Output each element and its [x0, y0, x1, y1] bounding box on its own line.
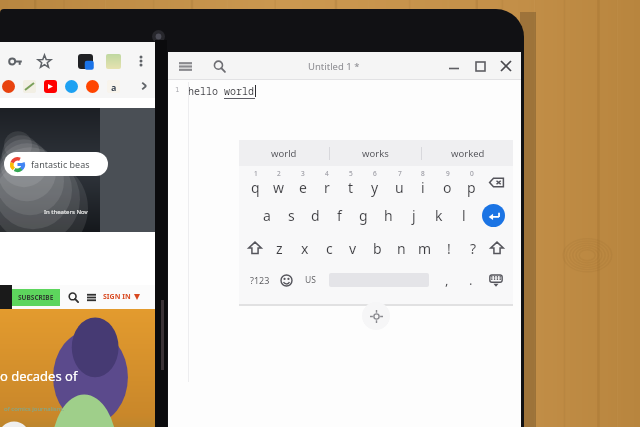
button[interactable]: d: [303, 199, 327, 232]
staticText: j: [412, 206, 416, 225]
button[interactable]: g: [351, 199, 376, 232]
staticText: i: [421, 178, 425, 197]
button[interactable]: Move keyboard: [362, 302, 390, 330]
button[interactable]: 9: [435, 166, 459, 199]
button[interactable]: SUBSCRIBE: [12, 289, 60, 306]
staticText: d: [311, 206, 320, 225]
button[interactable]: 6: [363, 166, 387, 199]
button[interactable]: 0: [459, 166, 483, 199]
button[interactable]: works: [330, 140, 421, 166]
staticText: o decades of: [0, 367, 78, 385]
staticText: m: [418, 239, 432, 258]
button[interactable]: b: [365, 232, 389, 264]
staticText: k: [435, 206, 443, 225]
staticText: s: [288, 206, 295, 225]
button[interactable]: 8: [411, 166, 435, 199]
button[interactable]: 7: [387, 166, 411, 199]
button[interactable]: ?: [461, 232, 485, 264]
button[interactable]: Space: [323, 273, 435, 287]
staticText: l: [462, 206, 466, 225]
staticText: worked: [451, 147, 485, 160]
staticText: 1: [175, 84, 180, 94]
button[interactable]: world: [239, 140, 329, 166]
button[interactable]: 1: [243, 166, 267, 199]
staticText: w: [273, 178, 285, 197]
button[interactable]: Hide keyboard: [483, 264, 509, 296]
button[interactable]: Menu: [178, 59, 193, 74]
button[interactable]: US: [297, 264, 323, 296]
button[interactable]: z: [267, 232, 292, 264]
staticText: n: [397, 239, 406, 258]
other: Password: [8, 54, 23, 69]
staticText: 5: [349, 169, 353, 178]
other: More: [134, 54, 148, 68]
button[interactable]: Password: [0, 48, 156, 74]
button[interactable]: .: [459, 264, 483, 296]
staticText: a: [263, 206, 271, 225]
button[interactable]: Emoji: [275, 264, 297, 296]
staticText: fantastic beas: [31, 158, 90, 170]
staticText: f: [337, 206, 342, 225]
button[interactable]: Shift: [485, 232, 509, 264]
button[interactable]: 5: [339, 166, 363, 199]
button[interactable]: c: [317, 232, 341, 264]
button[interactable]: Minimize: [441, 53, 467, 79]
staticText: q: [251, 178, 260, 197]
staticText: h: [384, 206, 393, 225]
staticText: world: [224, 84, 254, 98]
button[interactable]: Shift: [243, 232, 267, 264]
staticText: 8: [421, 169, 425, 178]
button[interactable]: a: [255, 199, 279, 232]
staticText: Untitled 1 *: [308, 60, 360, 73]
button[interactable]: a: [0, 74, 156, 98]
button[interactable]: Close: [493, 53, 519, 79]
button[interactable]: ,: [435, 264, 459, 296]
button[interactable]: 3: [291, 166, 315, 199]
button[interactable]: Search: [211, 58, 227, 74]
button[interactable]: s: [279, 199, 303, 232]
button[interactable]: m: [413, 232, 437, 264]
button[interactable]: x: [292, 232, 317, 264]
button[interactable]: !: [437, 232, 461, 264]
staticText: b: [373, 239, 382, 258]
button[interactable]: j: [401, 199, 426, 232]
staticText: t: [348, 178, 354, 197]
staticText: e: [299, 178, 307, 197]
staticText: y: [371, 178, 379, 197]
button[interactable]: k: [426, 199, 451, 232]
staticText: !: [447, 239, 451, 258]
button[interactable]: worked: [422, 140, 513, 166]
button[interactable]: Enter: [476, 199, 510, 232]
staticText: a: [111, 81, 117, 93]
staticText: In theaters Nov: [44, 208, 88, 216]
staticText: 6: [373, 169, 377, 178]
button[interactable]: l: [451, 199, 476, 232]
staticText: c: [326, 239, 333, 258]
staticText: world: [271, 147, 297, 160]
staticText: .: [469, 271, 473, 289]
button[interactable]: fantastic beas: [4, 152, 108, 176]
button[interactable]: 4: [315, 166, 339, 199]
staticText: of comics journalism.: [4, 405, 64, 413]
staticText: 7: [398, 169, 402, 178]
button[interactable]: 2: [267, 166, 291, 199]
staticText: x: [301, 239, 309, 258]
staticText: works: [362, 147, 389, 160]
staticText: 1: [254, 169, 258, 178]
staticText: 9: [446, 169, 450, 178]
button[interactable]: h: [376, 199, 401, 232]
staticText: hello: [188, 84, 224, 98]
button[interactable]: Maximize: [467, 53, 493, 79]
staticText: 0: [470, 169, 474, 178]
staticText: r: [324, 178, 330, 197]
button[interactable]: ?123: [245, 264, 275, 296]
staticText: u: [395, 178, 404, 197]
button[interactable]: n: [389, 232, 413, 264]
staticText: 3: [301, 169, 305, 178]
button[interactable]: v: [341, 232, 365, 264]
staticText: ,: [445, 271, 449, 289]
button[interactable]: Backspace: [483, 166, 509, 199]
button[interactable]: SIGN IN: [103, 292, 131, 302]
other: More bookmarks: [138, 80, 150, 92]
button[interactable]: f: [327, 199, 351, 232]
